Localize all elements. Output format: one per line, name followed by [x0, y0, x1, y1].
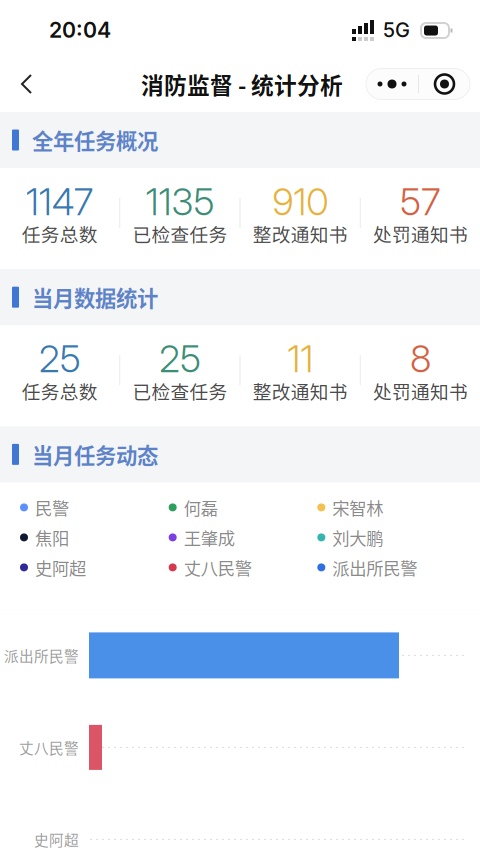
button[interactable]: Menu	[419, 68, 470, 99]
staticText: 全年任务概况	[32, 125, 158, 155]
staticText: 刘大鹏	[332, 525, 383, 550]
button[interactable]: 宋智林	[317, 492, 466, 522]
button[interactable]: 民警	[20, 492, 169, 522]
staticText: 11	[287, 336, 313, 381]
staticText: 已检查任务	[132, 220, 227, 247]
staticText: 宋智林	[332, 495, 383, 520]
button[interactable]: 王肇成	[169, 522, 317, 552]
staticText: 派出所民警	[4, 645, 79, 666]
button[interactable]: 焦阳	[20, 522, 169, 552]
staticText: 整改通知书	[253, 220, 348, 247]
staticText: 20:04	[49, 17, 111, 43]
staticText: 1135	[145, 179, 214, 224]
staticText: 派出所民警	[332, 555, 417, 580]
button[interactable]: 史阿超	[20, 552, 169, 582]
button[interactable]: More	[366, 68, 418, 99]
staticText: 25	[159, 336, 201, 381]
staticText: 8	[410, 336, 431, 381]
staticText: 任务总数	[22, 377, 98, 404]
staticText: 焦阳	[35, 525, 69, 550]
staticText: 何磊	[184, 495, 218, 520]
staticText: 消防监督 - 统计分析	[141, 68, 343, 100]
staticText: 当月任务动态	[32, 439, 158, 470]
button[interactable]: 何磊	[169, 492, 317, 522]
staticText: 民警	[35, 495, 69, 520]
staticText: 丈八民警	[19, 737, 79, 758]
staticText: 史阿超	[35, 555, 86, 580]
staticText: 处罚通知书	[373, 220, 468, 247]
button[interactable]: 刘大鹏	[317, 522, 466, 552]
staticText: 57	[400, 179, 441, 224]
staticText: 整改通知书	[253, 377, 348, 404]
staticText: 丈八民警	[184, 555, 252, 580]
staticText: 5G	[383, 18, 410, 42]
button[interactable]: 丈八民警	[169, 552, 317, 582]
staticText: 已检查任务	[132, 377, 227, 404]
staticText: 处罚通知书	[373, 377, 468, 404]
staticText: 王肇成	[184, 525, 235, 550]
staticText: 910	[272, 179, 328, 224]
button[interactable]: Back	[5, 62, 49, 106]
staticText: 1147	[26, 179, 94, 224]
staticText: 任务总数	[22, 220, 98, 247]
staticText: 25	[39, 336, 81, 381]
button[interactable]: 派出所民警	[317, 552, 466, 582]
staticText: 当月数据统计	[32, 282, 158, 313]
staticText: 史阿超	[34, 829, 79, 850]
